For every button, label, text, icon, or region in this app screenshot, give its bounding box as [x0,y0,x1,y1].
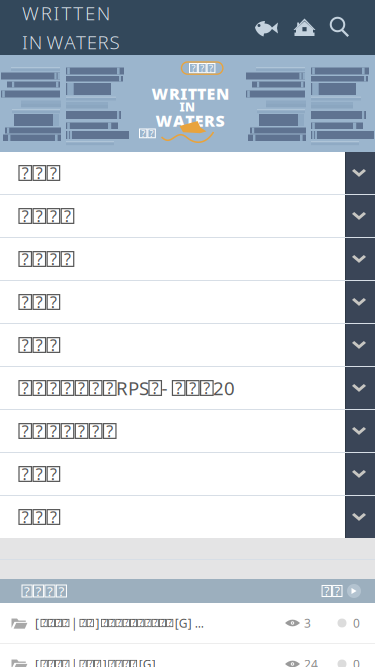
staticText: T [73,1,83,25]
staticText: R [204,110,215,131]
staticText: ? [132,659,135,667]
staticText: ? [22,334,29,356]
staticText: R [98,29,109,54]
staticText: [G] ... [175,615,204,631]
staticText: W [155,110,172,131]
staticText: W [22,1,39,25]
staticText: ? [89,618,92,628]
staticText: ? [22,162,29,184]
staticText: ? [22,377,29,399]
staticText: A [173,110,185,131]
staticText: ? [117,659,120,667]
staticText: - [161,376,172,400]
staticText: N [29,29,43,54]
staticText: I [22,29,28,54]
staticText: | [71,656,78,667]
staticText: ? [139,618,142,628]
staticText: ? [50,506,57,528]
staticText: ? [209,62,213,74]
button[interactable]: ? [0,195,375,237]
staticText: ? [50,248,57,270]
staticText: S [215,110,224,131]
staticText: E [87,29,97,54]
staticText: ? [64,618,67,628]
staticText: ? [22,205,29,227]
button[interactable]: ? [0,496,375,538]
staticText: ? [132,618,135,628]
staticText: 20 [213,376,235,400]
button[interactable]: ? [0,324,375,366]
staticText: ? [203,377,210,399]
staticText: ? [36,248,43,270]
button[interactable]: Fish [246,10,286,44]
button[interactable]: ? [0,410,375,452]
staticText: ? [22,463,29,485]
staticText: ? [43,659,46,667]
staticText: ? [92,420,99,442]
staticText: ? [50,334,57,356]
staticText: I [180,83,187,104]
button[interactable]: [ [0,644,375,667]
staticText: T [197,83,206,104]
staticText: ? [78,377,85,399]
button[interactable]: Home [286,10,323,44]
staticText: ? [22,248,29,270]
staticText: ? [36,334,43,356]
staticText: ? [50,162,57,184]
button[interactable]: ? [0,367,375,409]
staticText: ? [22,420,29,442]
staticText: ? [64,659,67,667]
staticText: ? [125,659,128,667]
staticText: ? [50,659,53,667]
staticText: S [109,29,119,54]
staticText: ? [47,582,53,600]
button[interactable]: ? [0,238,375,280]
staticText: ? [152,377,159,399]
staticText: ? [64,248,71,270]
staticText: N [97,1,111,25]
staticText: ? [96,659,99,667]
staticText: ? [50,205,57,227]
button[interactable]: ? [0,152,375,194]
staticText: ? [191,62,195,74]
staticText: ? [154,618,157,628]
staticText: ? [146,618,149,628]
staticText: R [41,1,52,25]
staticText: A [64,29,75,54]
staticText: N [216,83,229,104]
staticText: ? [22,291,29,313]
staticText: ? [36,506,43,528]
staticText: ? [57,659,60,667]
button[interactable]: ? [0,453,375,495]
staticText: ? [50,463,57,485]
staticText: 0 [353,656,360,667]
staticText: [ [35,656,39,667]
button[interactable]: ? [322,584,375,598]
staticText: ? [50,618,53,628]
staticText: ? [200,62,204,74]
staticText: ? [35,582,41,600]
staticText: ? [36,162,43,184]
staticText: ? [324,583,329,599]
staticText: ? [141,127,145,140]
button[interactable]: ? [0,281,375,323]
staticText: ? [50,377,57,399]
staticText: ? [106,377,113,399]
staticText: ? [161,618,164,628]
staticText: ? [50,420,57,442]
staticText: ? [50,291,57,313]
button[interactable]: Search [323,10,358,45]
staticText: ? [110,659,113,667]
staticText: 0 [353,615,360,631]
staticText: 24 [304,656,318,667]
button[interactable]: [ [0,603,375,643]
staticText: ? [82,618,85,628]
staticText: ? [168,618,171,628]
staticText: ? [36,291,43,313]
staticText: R [169,83,180,104]
staticText: ? [110,618,113,628]
staticText: ? [64,420,71,442]
staticText: E [85,1,95,25]
staticText: RPS [116,376,149,400]
staticText: ? [103,618,106,628]
